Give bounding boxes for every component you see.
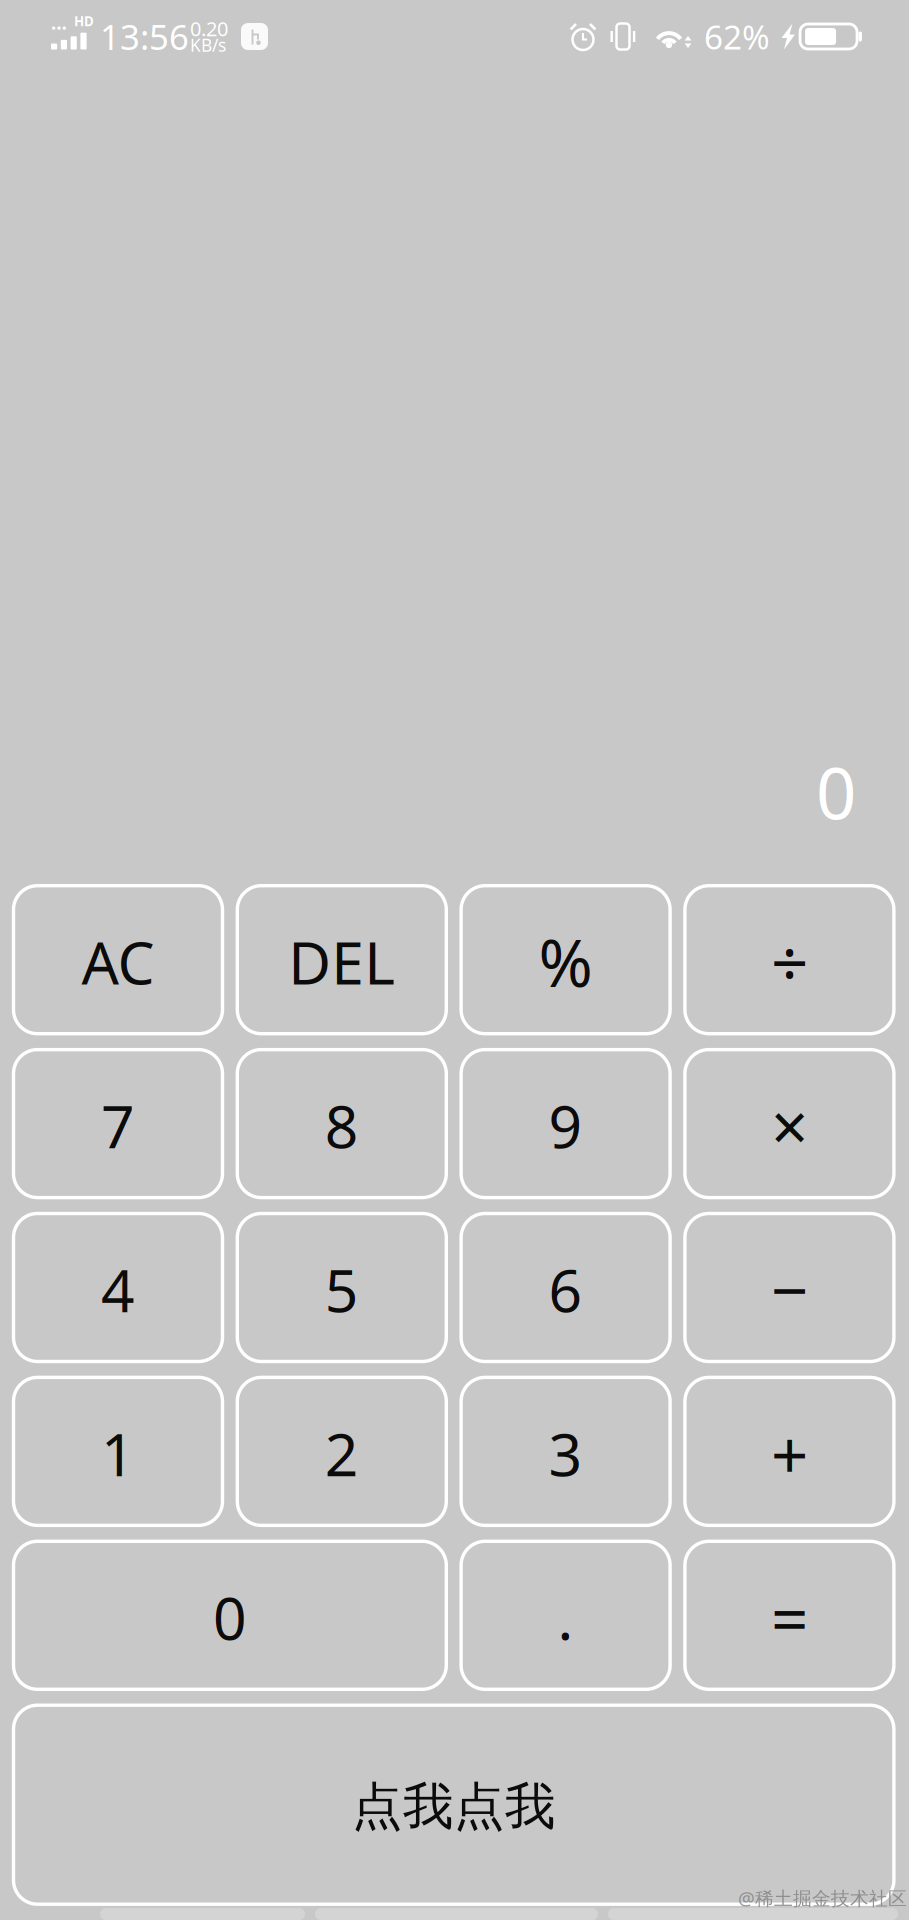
staticText: 13:56 <box>100 13 189 59</box>
button[interactable]: 7 <box>13 1050 222 1198</box>
button[interactable]: AC <box>13 886 222 1034</box>
staticText: 0 <box>816 745 856 839</box>
staticText: 0.20 <box>190 15 228 42</box>
staticText: 7 <box>101 1087 135 1164</box>
staticText: 2 <box>325 1414 359 1492</box>
staticText: 8 <box>325 1087 359 1164</box>
button[interactable]: − <box>685 1213 894 1361</box>
button[interactable]: = <box>685 1541 894 1689</box>
staticText: 3 <box>549 1414 583 1492</box>
staticText: 1 <box>101 1414 135 1492</box>
staticText: 4G <box>51 10 74 35</box>
staticText: − <box>771 1246 808 1333</box>
staticText: AC <box>81 923 154 1001</box>
button[interactable]: % <box>461 886 670 1034</box>
button[interactable]: 8 <box>237 1050 446 1198</box>
button[interactable]: 3 <box>461 1377 670 1525</box>
staticText: 62% <box>704 14 770 59</box>
staticText: + <box>771 1410 808 1497</box>
staticText: . <box>558 1578 574 1656</box>
staticText: DEL <box>288 923 395 1001</box>
button[interactable]: DEL <box>237 886 446 1034</box>
button[interactable]: 4 <box>13 1213 222 1361</box>
staticText: × <box>771 1082 808 1169</box>
staticText: 6 <box>549 1250 583 1328</box>
button[interactable]: + <box>685 1377 894 1525</box>
button[interactable]: 0 <box>13 1541 446 1689</box>
staticText: % <box>539 918 593 1005</box>
staticText: ÷ <box>771 918 808 1005</box>
button[interactable]: 1 <box>13 1377 222 1525</box>
button[interactable]: 2 <box>237 1377 446 1525</box>
staticText: KB/s <box>190 33 226 56</box>
staticText: 0 <box>213 1578 247 1656</box>
button[interactable]: 点我点我 <box>13 1705 894 1904</box>
button[interactable]: 9 <box>461 1050 670 1198</box>
button[interactable]: × <box>685 1050 894 1198</box>
staticText: 5 <box>325 1250 359 1328</box>
staticText: 9 <box>549 1087 583 1164</box>
staticText: 4 <box>101 1250 135 1328</box>
button[interactable]: 5 <box>237 1213 446 1361</box>
staticText: = <box>771 1574 808 1661</box>
staticText: @稀土掘金技术社区 <box>738 1886 907 1910</box>
button[interactable]: . <box>461 1541 670 1689</box>
staticText: 点我点我 <box>352 1776 556 1838</box>
staticText: HD <box>74 12 94 30</box>
button[interactable]: ÷ <box>685 886 894 1034</box>
button[interactable]: 6 <box>461 1213 670 1361</box>
